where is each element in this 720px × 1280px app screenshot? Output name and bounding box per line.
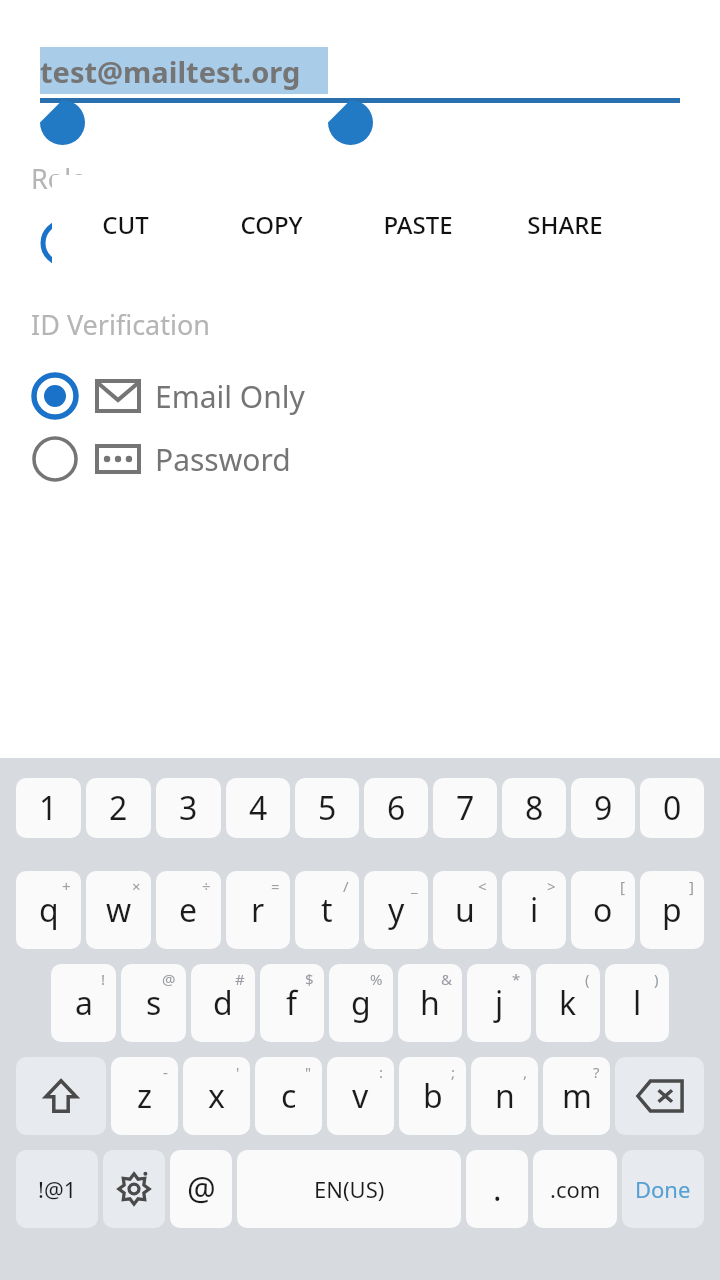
staticText: e: [179, 888, 198, 932]
staticText: SHARE: [527, 208, 603, 241]
staticText: 1: [39, 786, 58, 830]
staticText: PASTE: [383, 208, 453, 241]
button[interactable]: .com: [533, 1150, 617, 1228]
button[interactable]: SHARE: [491, 175, 638, 274]
staticText: ,: [523, 1062, 528, 1082]
button[interactable]: Keyboard settings: [103, 1150, 165, 1228]
staticText: !: [101, 969, 106, 989]
other: Selection end handle: [328, 100, 373, 145]
staticText: ?: [593, 1062, 600, 1082]
button[interactable]: Shift: [16, 1057, 106, 1135]
button[interactable]: 0: [640, 778, 704, 838]
staticText: 2: [109, 786, 128, 830]
staticText: 0: [663, 786, 682, 830]
button[interactable]: z: [111, 1057, 178, 1135]
staticText: g: [351, 981, 371, 1025]
staticText: Password: [155, 439, 291, 480]
button[interactable]: 1: [16, 778, 81, 838]
button[interactable]: 7: [433, 778, 497, 838]
button[interactable]: 8: [502, 778, 566, 838]
button[interactable]: g: [329, 964, 393, 1042]
button[interactable]: v: [327, 1057, 394, 1135]
staticText: (: [585, 969, 590, 989]
button[interactable]: m: [543, 1057, 610, 1135]
button[interactable]: Done: [622, 1150, 704, 1228]
button[interactable]: !@1: [16, 1150, 98, 1228]
staticText: ;: [451, 1062, 456, 1082]
staticText: Role: [31, 160, 87, 197]
button[interactable]: u: [433, 871, 497, 949]
staticText: !@1: [38, 1174, 77, 1204]
staticText: w: [106, 888, 132, 932]
staticText: ": [305, 1062, 312, 1082]
button[interactable]: k: [536, 964, 600, 1042]
staticText: s: [146, 981, 162, 1025]
staticText: 9: [594, 786, 613, 830]
button[interactable]: @: [170, 1150, 232, 1228]
staticText: p: [662, 888, 682, 932]
button[interactable]: COPY: [198, 175, 344, 274]
staticText: ÷: [202, 876, 211, 896]
button[interactable]: l: [605, 964, 669, 1042]
staticText: [: [620, 876, 625, 896]
staticText: r: [251, 888, 265, 932]
button[interactable]: 6: [364, 778, 428, 838]
button[interactable]: .: [466, 1150, 528, 1228]
button[interactable]: q: [16, 871, 81, 949]
button[interactable]: Backspace: [615, 1057, 704, 1135]
button[interactable]: f: [260, 964, 324, 1042]
button[interactable]: d: [191, 964, 255, 1042]
button[interactable]: a: [51, 964, 116, 1042]
staticText: y: [388, 888, 405, 932]
button[interactable]: 4: [226, 778, 290, 838]
staticText: o: [593, 888, 613, 932]
button[interactable]: o: [571, 871, 635, 949]
button[interactable]: x: [183, 1057, 250, 1135]
button[interactable]: y: [364, 871, 428, 949]
staticText: ): [654, 969, 659, 989]
staticText: 7: [456, 786, 475, 830]
staticText: ID Verification: [31, 306, 210, 343]
button[interactable]: i: [502, 871, 566, 949]
staticText: :: [379, 1062, 384, 1082]
button[interactable]: e: [156, 871, 221, 949]
staticText: t: [321, 888, 333, 932]
staticText: j: [495, 981, 504, 1025]
button[interactable]: 2: [86, 778, 151, 838]
button[interactable]: [40, 218, 88, 268]
staticText: =: [271, 876, 280, 896]
staticText: v: [352, 1074, 369, 1118]
staticText: n: [495, 1074, 515, 1118]
button[interactable]: s: [121, 964, 186, 1042]
staticText: @: [162, 969, 176, 989]
button[interactable]: 5: [295, 778, 359, 838]
button[interactable]: b: [399, 1057, 466, 1135]
button[interactable]: t: [295, 871, 359, 949]
button[interactable]: r: [226, 871, 290, 949]
staticText: i: [530, 888, 539, 932]
staticText: @: [187, 1167, 216, 1211]
staticText: Email Only: [155, 376, 305, 417]
staticText: ': [236, 1062, 240, 1082]
button[interactable]: p: [640, 871, 704, 949]
button[interactable]: PASTE: [344, 175, 491, 274]
button[interactable]: Email Only: [31, 368, 431, 424]
button[interactable]: n: [471, 1057, 538, 1135]
staticText: ×: [132, 876, 141, 896]
button[interactable]: Password: [31, 431, 431, 487]
staticText: z: [137, 1074, 153, 1118]
button[interactable]: j: [467, 964, 531, 1042]
staticText: *: [512, 969, 521, 989]
button[interactable]: 9: [571, 778, 635, 838]
button[interactable]: c: [255, 1057, 322, 1135]
button[interactable]: h: [398, 964, 462, 1042]
staticText: h: [420, 981, 440, 1025]
staticText: _: [411, 876, 418, 896]
button[interactable]: CUT: [52, 175, 198, 274]
button[interactable]: w: [86, 871, 151, 949]
staticText: .com: [550, 1174, 601, 1204]
staticText: 4: [249, 786, 268, 830]
button[interactable]: 3: [156, 778, 221, 838]
staticText: d: [213, 981, 233, 1025]
button[interactable]: EN(US): [237, 1150, 461, 1228]
